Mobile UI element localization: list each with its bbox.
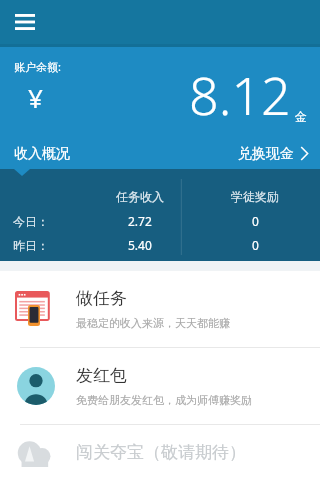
staticText: 0 xyxy=(252,213,259,229)
button[interactable]: 收入概况 xyxy=(0,138,160,169)
staticText: 2.72 xyxy=(128,213,152,229)
staticText: 发红包 xyxy=(76,365,127,386)
staticText: 5.40 xyxy=(128,237,152,253)
staticText: 兑换现金 xyxy=(238,145,294,163)
button[interactable]: 兑换现金 xyxy=(224,138,320,169)
staticText: 最稳定的收入来源，天天都能赚 xyxy=(76,316,230,330)
button[interactable]: 闯关夺宝（敬请期待） xyxy=(0,425,320,480)
staticText: 昨日： xyxy=(13,238,49,253)
staticText: 学徒奖励 xyxy=(231,189,279,204)
button[interactable]: 发红包 xyxy=(0,348,320,424)
staticText: 收入概况 xyxy=(14,145,70,163)
staticText: 做任务 xyxy=(76,288,127,309)
staticText: 闯关夺宝（敬请期待） xyxy=(76,442,246,463)
staticText: 8.12 xyxy=(189,59,291,130)
staticText: 0 xyxy=(252,237,259,253)
staticText: 金 xyxy=(295,109,307,124)
staticText: ¥ xyxy=(28,80,43,115)
staticText: 免费给朋友发红包，成为师傅赚奖励 xyxy=(76,393,252,407)
staticText: 任务收入 xyxy=(116,189,164,204)
button[interactable]: 做任务 xyxy=(0,271,320,347)
staticText: 今日： xyxy=(13,214,49,229)
button[interactable]: Menu xyxy=(8,5,42,39)
staticText: 账户余额: xyxy=(14,59,61,74)
